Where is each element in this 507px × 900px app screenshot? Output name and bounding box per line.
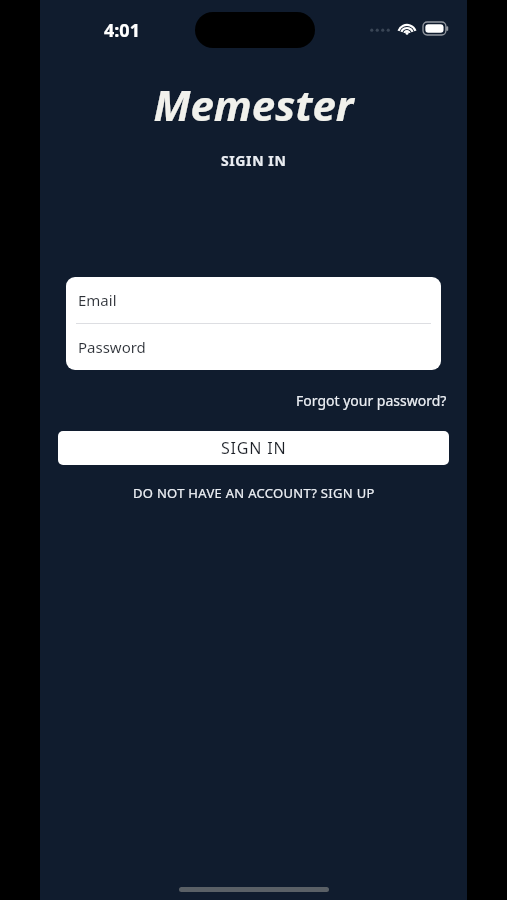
- staticText: Email: [78, 290, 117, 310]
- staticText: DO NOT HAVE AN ACCOUNT? SIGN UP: [133, 484, 375, 502]
- button[interactable]: Email: [66, 277, 441, 323]
- staticText: Forgot your password?: [296, 391, 447, 410]
- button[interactable]: Password: [66, 324, 441, 370]
- staticText: SIGIN IN: [221, 151, 287, 170]
- staticText: Password: [78, 337, 146, 357]
- button[interactable]: SIGN IN: [58, 431, 449, 465]
- staticText: SIGN IN: [221, 437, 287, 459]
- staticText: 4:01: [104, 18, 140, 43]
- button[interactable]: DO NOT HAVE AN ACCOUNT? SIGN UP: [127, 481, 381, 505]
- staticText: Memester: [153, 76, 354, 133]
- button[interactable]: Forgot your password?: [294, 388, 449, 413]
